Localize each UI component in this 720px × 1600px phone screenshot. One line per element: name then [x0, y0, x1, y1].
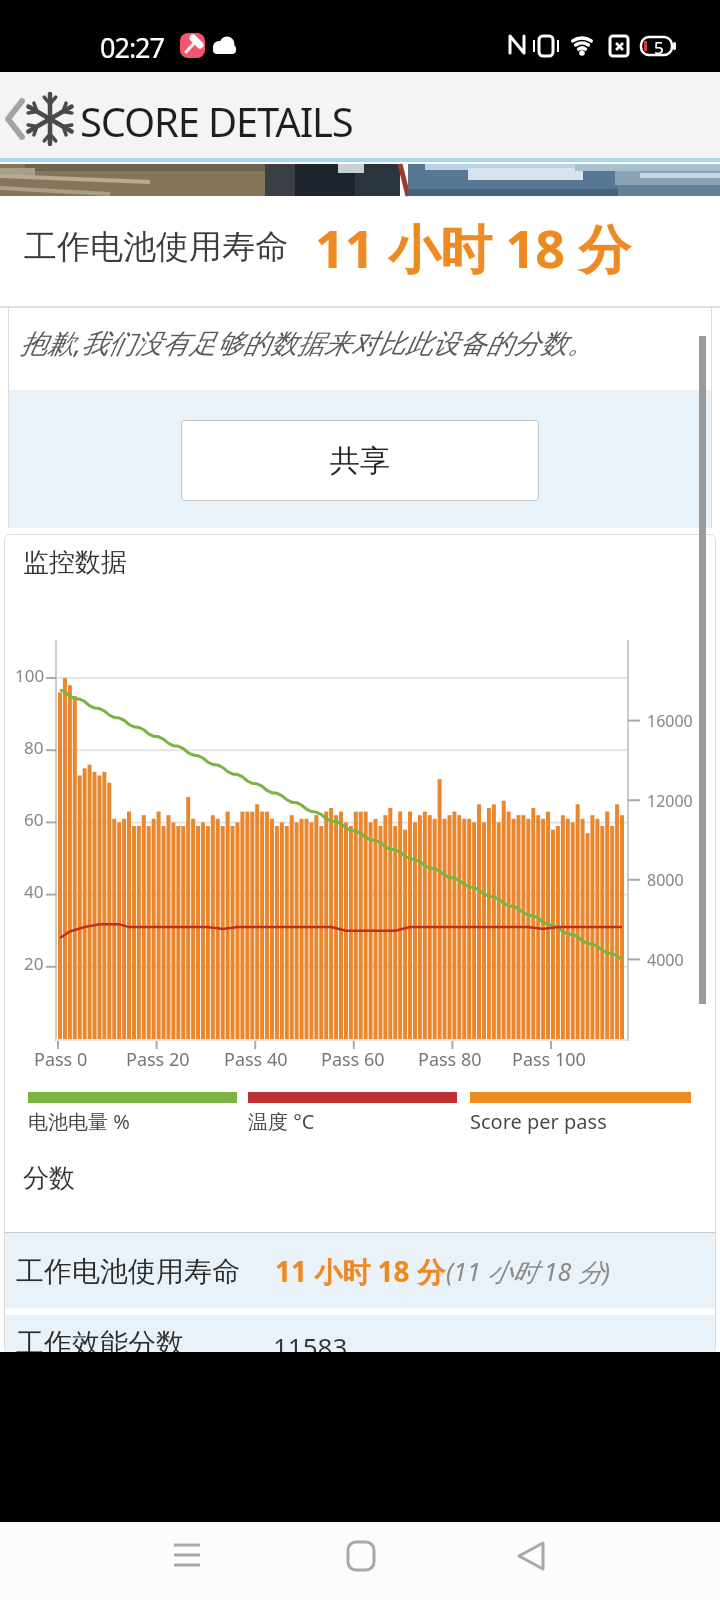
- staticText: 16000: [647, 710, 693, 732]
- staticText: Pass 20: [126, 1047, 190, 1072]
- staticText: 抱歉,我们没有足够的数据来对比此设备的分数。: [20, 324, 594, 361]
- button[interactable]: [160, 1530, 214, 1584]
- staticText: 80: [24, 736, 44, 759]
- button[interactable]: [0, 72, 720, 158]
- staticText: Pass 80: [418, 1047, 482, 1072]
- staticText: 8000: [647, 869, 684, 891]
- staticText: 40: [24, 880, 44, 903]
- staticText: 4000: [647, 949, 684, 971]
- staticText: 11 小时 18 分: [275, 1252, 445, 1290]
- staticText: 11 小时 18 分: [315, 212, 631, 283]
- staticText: Score per pass: [470, 1108, 607, 1135]
- staticText: 共享: [330, 442, 390, 480]
- button[interactable]: [5, 1232, 715, 1308]
- staticText: 工作电池使用寿命: [24, 226, 288, 268]
- staticText: (11 小时 18 分): [446, 1254, 611, 1288]
- staticText: Pass 40: [224, 1047, 288, 1072]
- staticText: 02:27: [100, 29, 165, 66]
- staticText: 电池电量 %: [28, 1108, 130, 1135]
- staticText: 12000: [647, 790, 693, 812]
- staticText: 60: [24, 808, 44, 831]
- staticText: Pass 100: [512, 1047, 586, 1072]
- staticText: 20: [24, 952, 44, 975]
- staticText: 100: [15, 664, 45, 687]
- staticText: 监控数据: [23, 546, 127, 579]
- staticText: 温度 °C: [248, 1108, 315, 1135]
- staticText: 分数: [23, 1162, 75, 1195]
- button[interactable]: [5, 1315, 715, 1352]
- button[interactable]: [505, 1530, 559, 1584]
- staticText: SCORE DETAILS: [80, 94, 353, 148]
- button[interactable]: 共享: [181, 420, 539, 501]
- staticText: Pass 0: [34, 1047, 88, 1072]
- staticText: Pass 60: [321, 1047, 385, 1072]
- staticText: 11583: [273, 1329, 348, 1364]
- staticText: 5: [654, 36, 664, 59]
- button[interactable]: [334, 1530, 388, 1584]
- staticText: 工作电池使用寿命: [16, 1254, 240, 1289]
- staticText: 工作效能分数: [16, 1326, 184, 1361]
